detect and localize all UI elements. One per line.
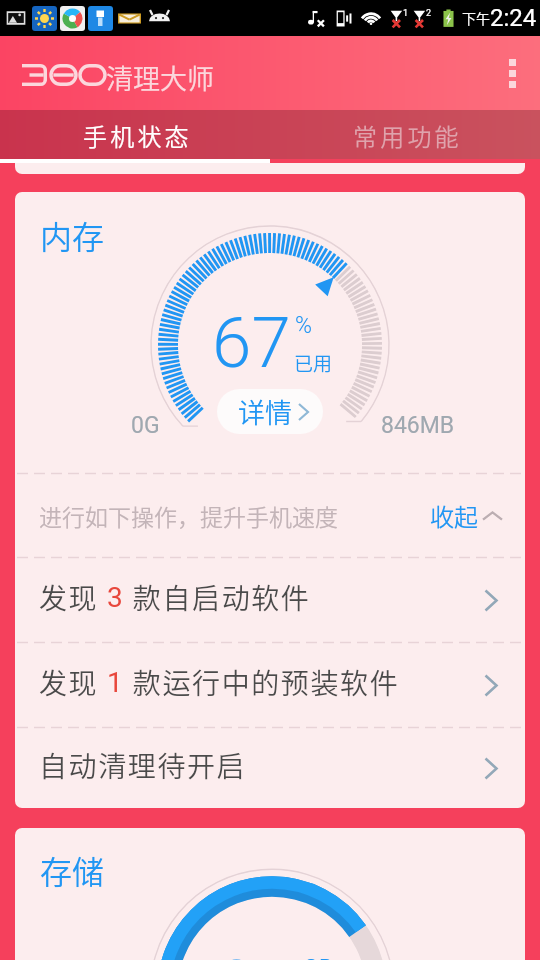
staticText: 款自启动软件	[125, 577, 311, 618]
staticText: 发现	[39, 577, 107, 618]
staticText: 存储	[40, 847, 105, 893]
staticText: 详情	[238, 392, 292, 431]
staticText: 67	[212, 301, 291, 384]
button[interactable]: More options	[484, 36, 540, 110]
staticText: 1	[403, 8, 409, 19]
staticText: 收起	[430, 498, 478, 533]
staticText: GB	[303, 955, 333, 960]
staticText: %	[295, 312, 313, 339]
staticText: 清理大师	[106, 58, 214, 97]
button[interactable]: 发现	[15, 643, 525, 727]
button[interactable]: 常用功能	[270, 110, 540, 159]
staticText: 1	[107, 666, 125, 699]
staticText: 常用功能	[353, 118, 462, 153]
staticText: 已用	[294, 349, 333, 377]
button[interactable]: 收起	[430, 488, 502, 543]
staticText: 0G	[131, 412, 160, 439]
staticText: 846MB	[381, 412, 455, 439]
staticText: 3.4	[217, 944, 313, 960]
staticText: 发现	[39, 662, 107, 703]
staticText: 进行如下操作，提升手机速度	[39, 499, 338, 532]
button[interactable]: 详情	[217, 389, 323, 434]
staticText: 内存	[40, 212, 105, 258]
staticText: 下午	[462, 8, 490, 28]
button[interactable]: 手机状态	[0, 110, 270, 159]
staticText: 3	[107, 581, 125, 614]
staticText: 2:24	[490, 4, 537, 32]
staticText: 手机状态	[83, 118, 192, 153]
button[interactable]: 自动清理待开启	[15, 728, 525, 808]
staticText: 2	[426, 8, 432, 19]
staticText: 自动清理待开启	[39, 745, 247, 786]
button[interactable]: 发现	[15, 558, 525, 642]
staticText: 款运行中的预装软件	[125, 662, 400, 703]
